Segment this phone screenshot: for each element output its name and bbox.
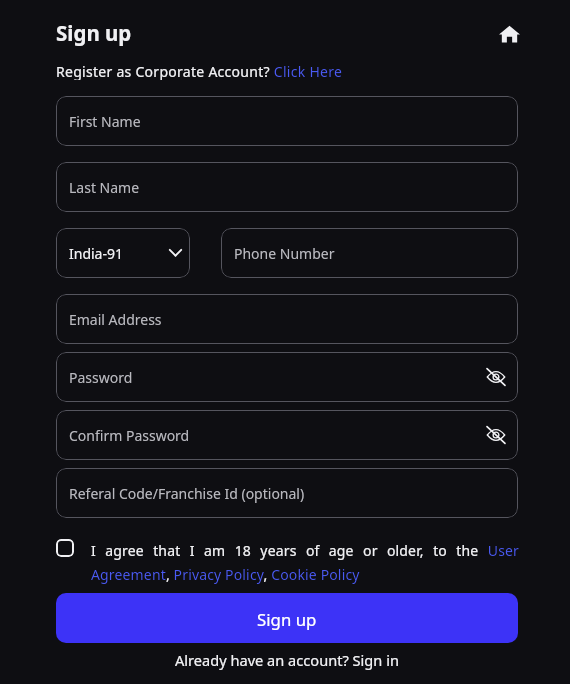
button[interactable]: I agree to the terms — [56, 539, 74, 557]
button[interactable]: Password — [56, 352, 518, 402]
button[interactable]: Email Address — [56, 294, 518, 344]
staticText: Sign up — [257, 608, 317, 631]
staticText: Email Address — [69, 310, 162, 329]
button[interactable]: Show password — [483, 364, 509, 390]
button[interactable]: First Name — [56, 96, 518, 146]
staticText: Register as Corporate Account? Click Her… — [56, 62, 343, 80]
button[interactable]: Phone Number — [221, 228, 518, 278]
button[interactable]: Home — [497, 21, 522, 46]
staticText: Phone Number — [234, 244, 335, 263]
button[interactable]: Register as Corporate Account? Click Her… — [56, 62, 343, 80]
staticText: First Name — [69, 112, 141, 131]
button[interactable]: India-91 — [56, 228, 190, 278]
staticText: Password — [69, 368, 133, 387]
staticText: Confirm Password — [69, 426, 190, 445]
staticText: Sign up — [56, 19, 132, 47]
staticText: I agree that I am 18 years of age or old… — [91, 541, 519, 584]
staticText: India-91 — [69, 244, 123, 263]
button[interactable]: Confirm Password — [56, 410, 518, 460]
button[interactable]: I agree that I am 18 years of age or old… — [91, 541, 519, 584]
button[interactable]: Show password — [483, 422, 509, 448]
staticText: Already have an account? Sign in — [175, 650, 399, 670]
button[interactable]: Already have an account? Sign in — [56, 649, 518, 671]
button[interactable]: Last Name — [56, 162, 518, 212]
staticText: Last Name — [69, 178, 140, 197]
button[interactable]: Sign up — [56, 593, 518, 643]
staticText: Referal Code/Franchise Id (optional) — [69, 484, 305, 503]
button[interactable]: Referal Code/Franchise Id (optional) — [56, 468, 518, 518]
